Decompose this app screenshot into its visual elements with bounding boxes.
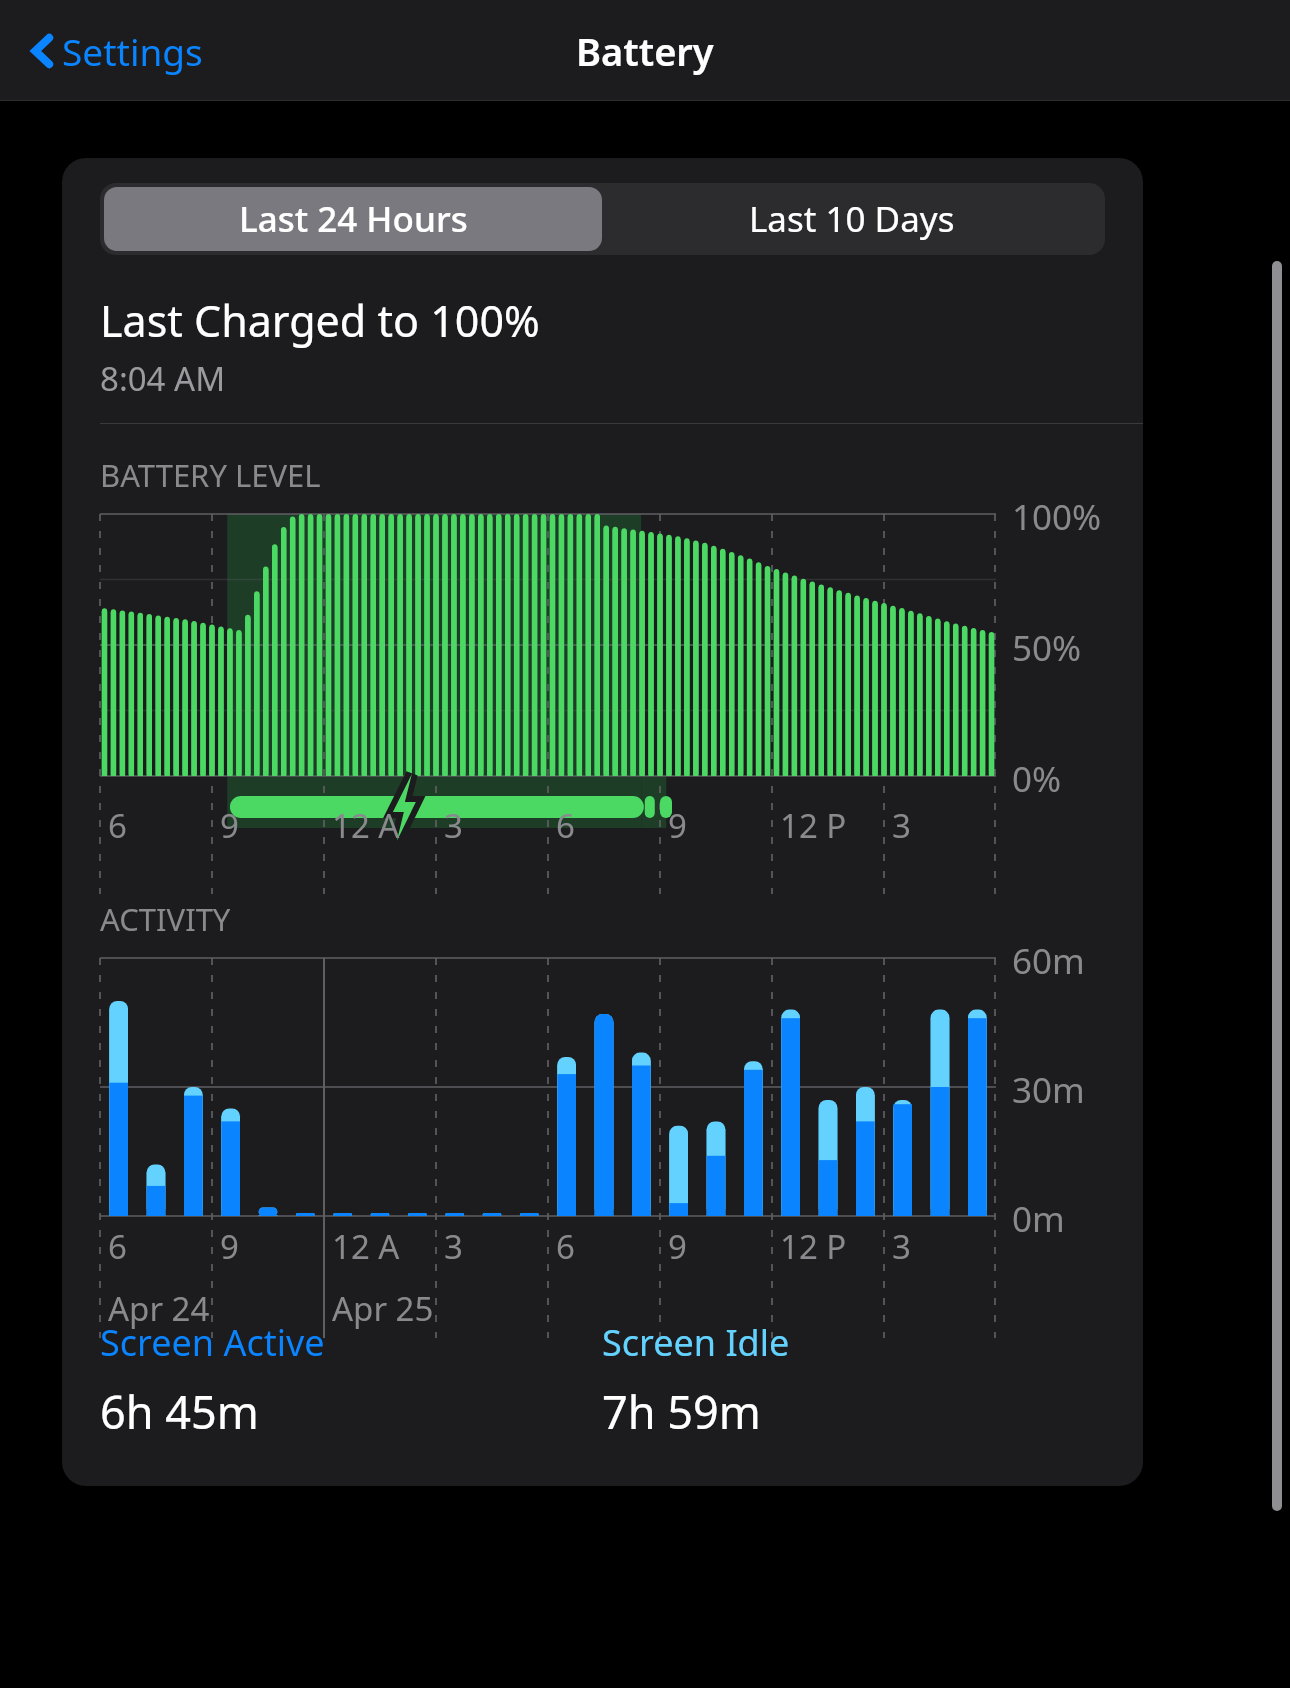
- button[interactable]: Last 10 Days: [602, 187, 1101, 251]
- staticText: 6: [556, 1224, 575, 1269]
- staticText: 0%: [1012, 755, 1062, 803]
- staticText: 30m: [1012, 1066, 1085, 1114]
- staticText: 60m: [1012, 937, 1085, 985]
- staticText: ACTIVITY: [100, 898, 231, 940]
- staticText: 6: [108, 1224, 127, 1269]
- staticText: Battery: [576, 25, 714, 77]
- staticText: 6h 45m: [100, 1381, 259, 1442]
- staticText: Last Charged to 100%: [100, 291, 540, 350]
- staticText: 12 P: [780, 1224, 847, 1269]
- staticText: BATTERY LEVEL: [100, 454, 321, 496]
- staticText: 6: [108, 803, 127, 848]
- staticText: 0m: [1012, 1195, 1065, 1243]
- staticText: Apr 25: [332, 1286, 434, 1331]
- staticText: 50%: [1012, 624, 1082, 672]
- staticText: 6: [556, 803, 575, 848]
- staticText: 100%: [1012, 493, 1102, 541]
- staticText: Settings: [62, 26, 203, 76]
- staticText: 8:04 AM: [100, 356, 226, 401]
- staticText: 3: [892, 803, 911, 848]
- staticText: 12 A: [332, 803, 400, 848]
- staticText: Last 10 Days: [749, 195, 955, 243]
- staticText: 9: [668, 1224, 687, 1269]
- staticText: 12 A: [332, 1224, 400, 1269]
- button[interactable]: Last 24 Hours: [104, 187, 602, 251]
- staticText: 9: [220, 803, 239, 848]
- staticText: 12 P: [780, 803, 847, 848]
- staticText: 3: [892, 1224, 911, 1269]
- staticText: Screen Active: [100, 1318, 325, 1367]
- staticText: 3: [444, 803, 463, 848]
- staticText: 9: [668, 803, 687, 848]
- staticText: Last 24 Hours: [239, 195, 468, 243]
- staticText: Apr 24: [108, 1286, 210, 1331]
- staticText: 9: [220, 1224, 239, 1269]
- staticText: 7h 59m: [602, 1381, 761, 1442]
- staticText: Screen Idle: [602, 1318, 790, 1367]
- staticText: 3: [444, 1224, 463, 1269]
- button[interactable]: Back to Settings: [24, 16, 209, 86]
